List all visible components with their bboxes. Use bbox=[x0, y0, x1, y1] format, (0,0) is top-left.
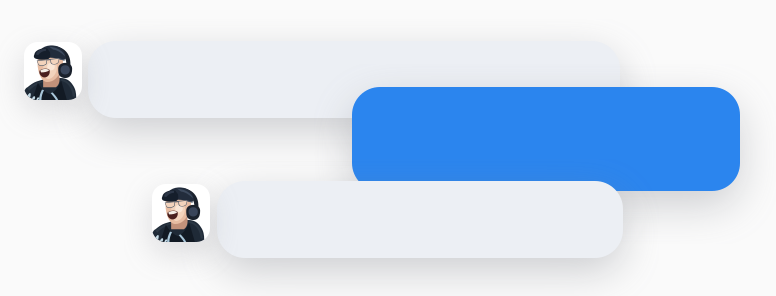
button[interactable] bbox=[352, 87, 740, 191]
button[interactable] bbox=[217, 181, 623, 258]
button[interactable]: Sender profile photo bbox=[24, 42, 82, 100]
button[interactable] bbox=[88, 41, 620, 118]
button[interactable]: Sender profile photo bbox=[152, 184, 210, 242]
